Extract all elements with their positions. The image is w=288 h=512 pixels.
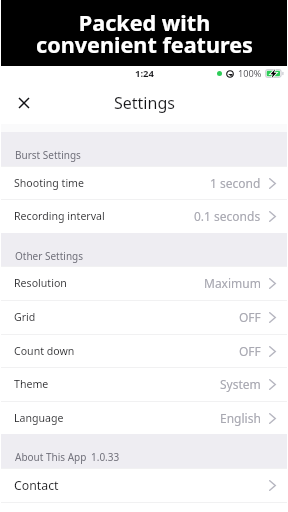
button[interactable]: Shooting time bbox=[1, 166, 287, 200]
staticText: OFF bbox=[239, 309, 261, 325]
button[interactable]: Theme bbox=[1, 367, 287, 401]
button[interactable]: Resolution bbox=[1, 266, 287, 300]
button[interactable]: Grid bbox=[1, 300, 287, 334]
staticText: 1.0.33 bbox=[91, 450, 120, 464]
button[interactable]: Language bbox=[1, 401, 287, 435]
staticText: English bbox=[220, 410, 261, 426]
staticText: Theme bbox=[14, 377, 49, 391]
staticText: Shooting time bbox=[14, 176, 84, 190]
staticText: About This App bbox=[15, 450, 87, 464]
staticText: 1 second bbox=[210, 175, 261, 191]
staticText: Settings bbox=[114, 92, 175, 114]
button[interactable]: Close bbox=[11, 90, 37, 116]
staticText: 1:24 bbox=[135, 67, 154, 80]
button[interactable]: Recording interval bbox=[1, 199, 287, 233]
staticText: Other Settings bbox=[15, 249, 84, 263]
staticText: Burst Settings bbox=[15, 148, 81, 162]
staticText: 100% bbox=[238, 67, 262, 80]
staticText: System bbox=[220, 376, 261, 392]
staticText: Maximum bbox=[204, 275, 261, 291]
staticText: Grid bbox=[14, 310, 36, 324]
staticText: Recording interval bbox=[14, 209, 105, 223]
staticText: 0.1 seconds bbox=[194, 208, 261, 224]
staticText: Count down bbox=[14, 344, 75, 358]
staticText: Contact bbox=[14, 477, 59, 494]
button[interactable]: Count down bbox=[1, 334, 287, 368]
staticText: Resolution bbox=[14, 276, 67, 290]
staticText: Language bbox=[14, 411, 64, 425]
staticText: OFF bbox=[239, 343, 261, 359]
button[interactable]: Contact bbox=[1, 468, 287, 502]
staticText: Packed with convenient features bbox=[36, 8, 253, 60]
